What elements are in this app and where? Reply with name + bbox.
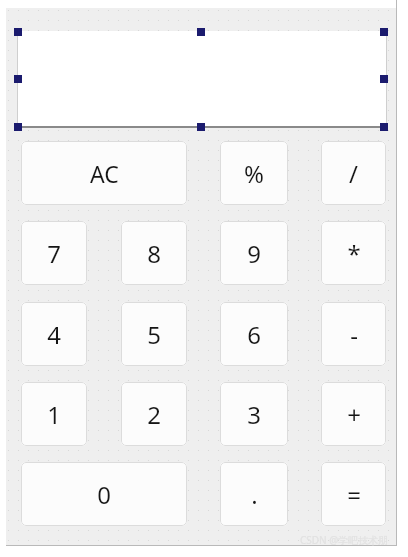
staticText: 7 [47, 237, 61, 270]
staticText: CSDN @学吧技术朋友 [300, 533, 396, 547]
button[interactable]: 6 [220, 302, 288, 366]
button[interactable]: / [321, 141, 386, 205]
button[interactable]: = [321, 462, 386, 526]
staticText: 2 [147, 398, 161, 431]
button[interactable]: AC [21, 141, 187, 205]
button[interactable]: 2 [121, 382, 187, 446]
button[interactable]: 1 [21, 382, 87, 446]
button[interactable]: 0 [21, 462, 187, 526]
button[interactable]: . [220, 462, 288, 526]
button[interactable]: * [321, 221, 386, 285]
staticText: 1 [47, 398, 61, 431]
staticText: 0 [97, 478, 111, 511]
button[interactable]: 3 [220, 382, 288, 446]
staticText: 3 [247, 398, 261, 431]
staticText: / [349, 157, 358, 190]
staticText: 5 [147, 318, 161, 351]
staticText: 6 [247, 318, 261, 351]
button[interactable]: % [220, 141, 288, 205]
button[interactable] [17, 31, 387, 127]
staticText: 4 [47, 318, 61, 351]
staticText: % [244, 157, 264, 190]
button[interactable]: 5 [121, 302, 187, 366]
button[interactable]: 8 [121, 221, 187, 285]
button[interactable]: 9 [220, 221, 288, 285]
staticText: = [347, 478, 361, 511]
staticText: 9 [247, 237, 261, 270]
staticText: . [251, 478, 258, 511]
staticText: - [350, 318, 358, 351]
button[interactable]: 7 [21, 221, 87, 285]
button[interactable]: 4 [21, 302, 87, 366]
staticText: * [347, 237, 361, 270]
staticText: 8 [147, 237, 161, 270]
button[interactable]: - [321, 302, 386, 366]
staticText: + [347, 398, 361, 431]
button[interactable]: + [321, 382, 386, 446]
staticText: AC [90, 158, 119, 189]
